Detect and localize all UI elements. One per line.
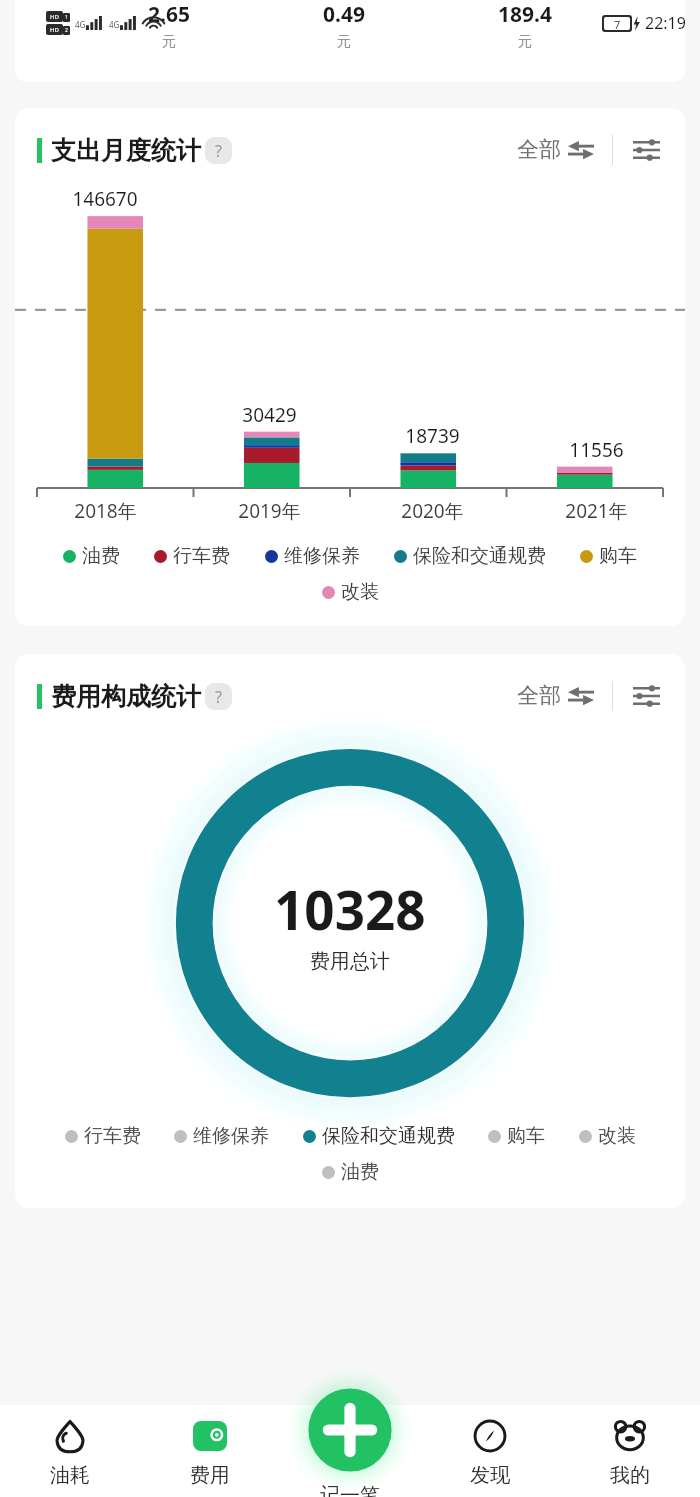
button[interactable]: 维修保养	[174, 1124, 269, 1148]
button[interactable]: 筛选	[629, 133, 663, 167]
staticText: 维修保养	[284, 544, 360, 568]
staticText: 保险和交通规费	[322, 1124, 455, 1148]
staticText: 元	[518, 33, 532, 51]
staticText: 11556	[569, 437, 624, 463]
staticText: 行车费	[173, 544, 230, 568]
button[interactable]: 改装	[322, 580, 379, 604]
button[interactable]: 保险和交通规费	[394, 544, 546, 568]
staticText: 2020年	[401, 498, 464, 524]
staticText: 费用总计	[310, 949, 390, 974]
staticText: 油费	[82, 544, 120, 568]
staticText: 18739	[405, 423, 460, 449]
staticText: 146670	[72, 186, 138, 212]
staticText: 油费	[341, 1160, 379, 1184]
staticText: 费用	[190, 1463, 230, 1488]
staticText: 我的	[610, 1463, 650, 1488]
staticText: 2021年	[565, 498, 628, 524]
staticText: 全部	[517, 136, 561, 164]
button[interactable]: 我的	[560, 1405, 700, 1497]
button[interactable]: 维修保养	[265, 544, 360, 568]
staticText: 发现	[470, 1463, 510, 1488]
staticText: HD	[50, 13, 59, 21]
staticText: ?	[215, 686, 222, 708]
button[interactable]: 筛选	[629, 679, 663, 713]
staticText: 购车	[599, 544, 637, 568]
button[interactable]: 记一笔	[298, 1378, 402, 1482]
staticText: 记一笔	[320, 1483, 380, 1497]
button[interactable]: 发现	[420, 1405, 560, 1497]
staticText: 支出月度统计	[51, 135, 201, 166]
staticText: 油耗	[50, 1463, 90, 1488]
button[interactable]: 油耗	[0, 1405, 140, 1497]
staticText: 费用构成统计	[51, 681, 201, 712]
staticText: 189.4	[498, 0, 552, 29]
staticText: 4G	[109, 19, 120, 30]
staticText: 30429	[242, 402, 297, 428]
staticText: 元	[162, 33, 176, 51]
staticText: 1	[65, 14, 68, 21]
button[interactable]: 行车费	[154, 544, 230, 568]
staticText: 2.65	[148, 0, 190, 29]
staticText: 改装	[598, 1124, 636, 1148]
button[interactable]: 油费	[322, 1160, 379, 1184]
staticText: HD	[50, 26, 59, 34]
staticText: 0.49	[323, 0, 365, 29]
button[interactable]: 费用	[140, 1405, 280, 1497]
staticText: 7	[614, 17, 621, 30]
staticText: 2	[65, 27, 68, 34]
staticText: 元	[337, 33, 351, 51]
staticText: 行车费	[84, 1124, 141, 1148]
staticText: 2019年	[238, 498, 301, 524]
button[interactable]: 帮助	[205, 683, 232, 710]
staticText: 22:19	[645, 12, 686, 34]
staticText: 全部	[517, 682, 561, 710]
button[interactable]: 改装	[579, 1124, 636, 1148]
button[interactable]: 全部	[513, 678, 598, 714]
button[interactable]: 行车费	[65, 1124, 141, 1148]
staticText: ?	[215, 140, 222, 162]
staticText: 4G	[75, 19, 86, 30]
staticText: 保险和交通规费	[413, 544, 546, 568]
staticText: 维修保养	[193, 1124, 269, 1148]
button[interactable]: 保险和交通规费	[303, 1124, 455, 1148]
button[interactable]: 购车	[488, 1124, 545, 1148]
staticText: 购车	[507, 1124, 545, 1148]
button[interactable]: 全部	[513, 132, 598, 168]
button[interactable]: 购车	[580, 544, 637, 568]
staticText: 2018年	[74, 498, 137, 524]
staticText: 10328	[274, 873, 426, 945]
button[interactable]: 油费	[63, 544, 120, 568]
staticText: 改装	[341, 580, 379, 604]
button[interactable]: 帮助	[205, 137, 232, 164]
